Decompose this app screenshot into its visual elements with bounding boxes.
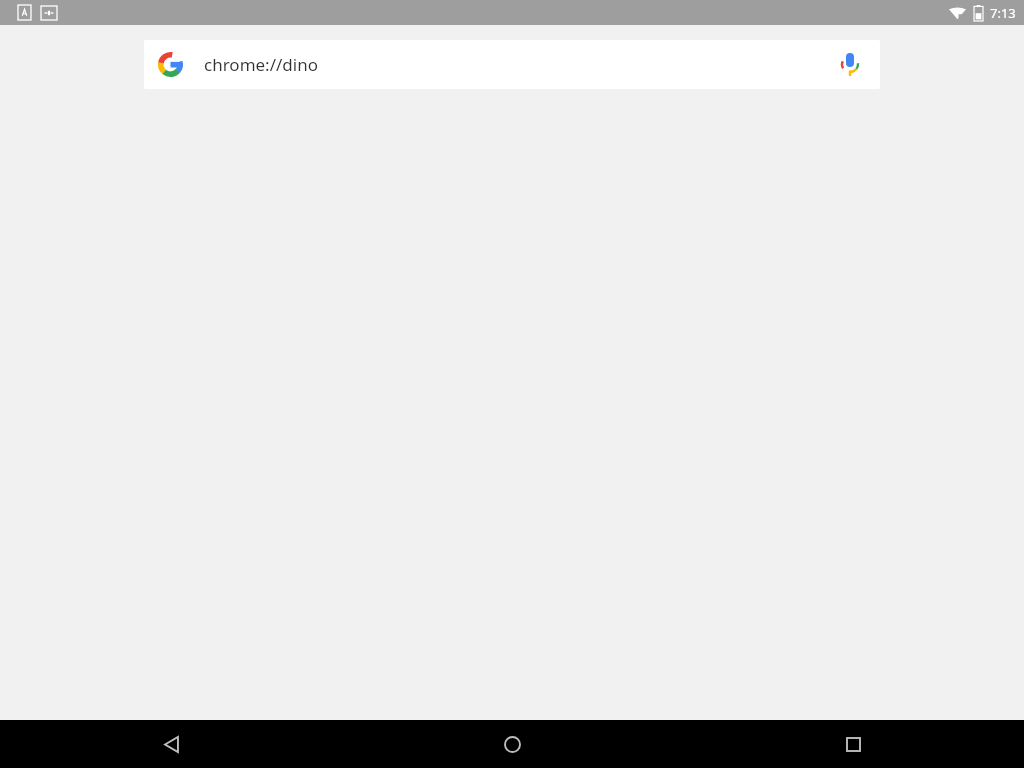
button[interactable]: Back	[147, 720, 195, 768]
button[interactable]: Recent apps	[829, 720, 877, 768]
staticText: 7:13	[990, 4, 1016, 22]
button[interactable]: chrome://dino	[144, 40, 880, 89]
staticText: chrome://dino	[204, 53, 318, 76]
button[interactable]: Voice search	[828, 43, 872, 87]
button[interactable]: Home	[488, 720, 536, 768]
